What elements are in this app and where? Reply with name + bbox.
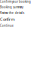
staticText: Confirm — [0, 17, 15, 22]
staticText: Booking summary — [0, 5, 23, 9]
staticText: Review the details — [0, 11, 24, 15]
staticText: Confirm your booking — [0, 0, 31, 3]
staticText: Continue — [0, 24, 14, 27]
